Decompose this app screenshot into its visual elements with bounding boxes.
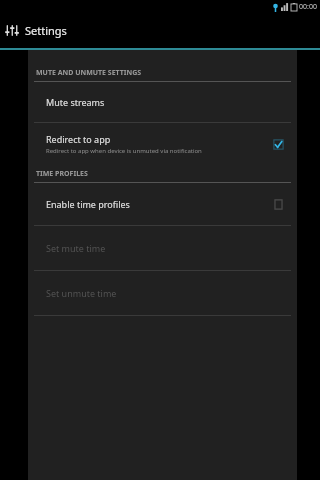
staticText: Set mute time [46,242,106,254]
staticText: MUTE AND UNMUTE SETTINGS [36,68,142,78]
staticText: Redirect to app [46,133,111,145]
button[interactable]: Settings app icon [0,13,320,48]
button[interactable]: Set mute time [28,226,297,270]
button[interactable]: Set unmute time [28,271,297,315]
staticText: Mute streams [46,96,105,108]
button[interactable]: Mute streams [28,82,297,122]
staticText: Redirect to app when device is unmuted v… [46,147,202,155]
staticText: TIME PROFILES [36,169,88,179]
button[interactable]: Enable time profiles [28,183,297,225]
button[interactable]: Unchecked [269,195,287,213]
staticText: Enable time profiles [46,198,130,210]
staticText: Settings [25,23,67,38]
button[interactable]: Redirect to app [28,123,297,165]
button[interactable]: Checked [269,135,287,153]
other: Settings app icon [4,23,19,38]
staticText: Set unmute time [46,287,117,299]
staticText: 00:00 [299,2,317,12]
